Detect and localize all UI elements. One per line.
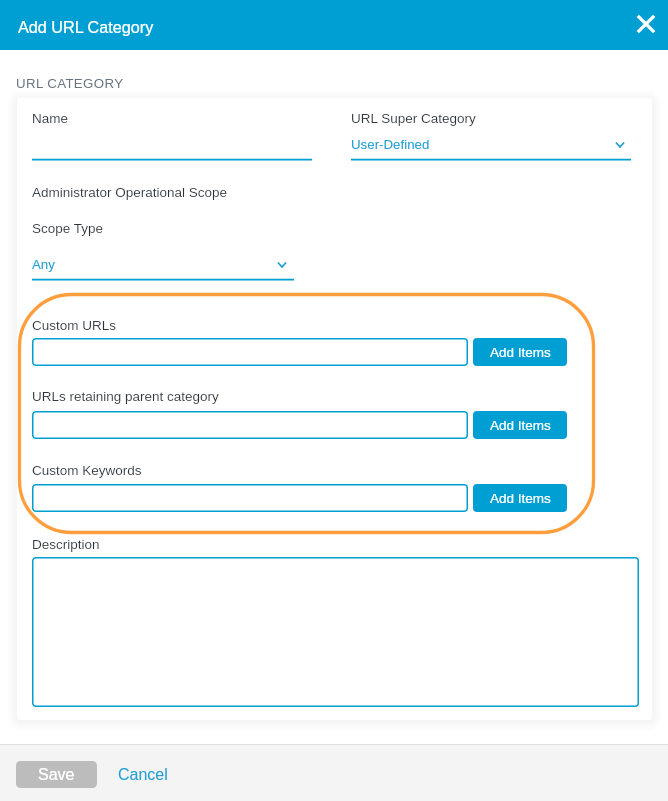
button[interactable]: User-Defined bbox=[351, 133, 631, 159]
staticText: User-Defined bbox=[351, 137, 430, 152]
button[interactable] bbox=[32, 484, 468, 512]
staticText: URLs retaining parent category bbox=[32, 389, 219, 404]
button[interactable]: Add Items bbox=[473, 338, 567, 366]
button[interactable] bbox=[32, 557, 639, 707]
staticText: Scope Type bbox=[32, 221, 104, 236]
button[interactable]: Close bbox=[630, 8, 662, 40]
staticText: Add Items bbox=[490, 418, 551, 433]
staticText: URL CATEGORY bbox=[16, 76, 124, 91]
button[interactable]: Any bbox=[32, 253, 294, 279]
staticText: Custom URLs bbox=[32, 318, 117, 333]
staticText: Add URL Category bbox=[18, 18, 154, 36]
staticText: Administrator Operational Scope bbox=[32, 185, 228, 200]
button[interactable] bbox=[32, 158, 312, 161]
button[interactable]: Add Items bbox=[473, 484, 567, 512]
button[interactable] bbox=[32, 411, 468, 439]
staticText: Save bbox=[38, 766, 75, 784]
button[interactable]: Save bbox=[16, 761, 97, 788]
staticText: Cancel bbox=[118, 766, 168, 784]
button[interactable]: Cancel bbox=[112, 761, 174, 788]
button[interactable]: Add Items bbox=[473, 411, 567, 439]
staticText: Any bbox=[32, 257, 55, 272]
staticText: URL Super Category bbox=[351, 111, 476, 126]
staticText: Description bbox=[32, 537, 100, 552]
button[interactable] bbox=[32, 338, 468, 366]
staticText: Add Items bbox=[490, 345, 551, 360]
staticText: Add Items bbox=[490, 491, 551, 506]
staticText: Custom Keywords bbox=[32, 463, 142, 478]
staticText: Name bbox=[32, 111, 69, 126]
